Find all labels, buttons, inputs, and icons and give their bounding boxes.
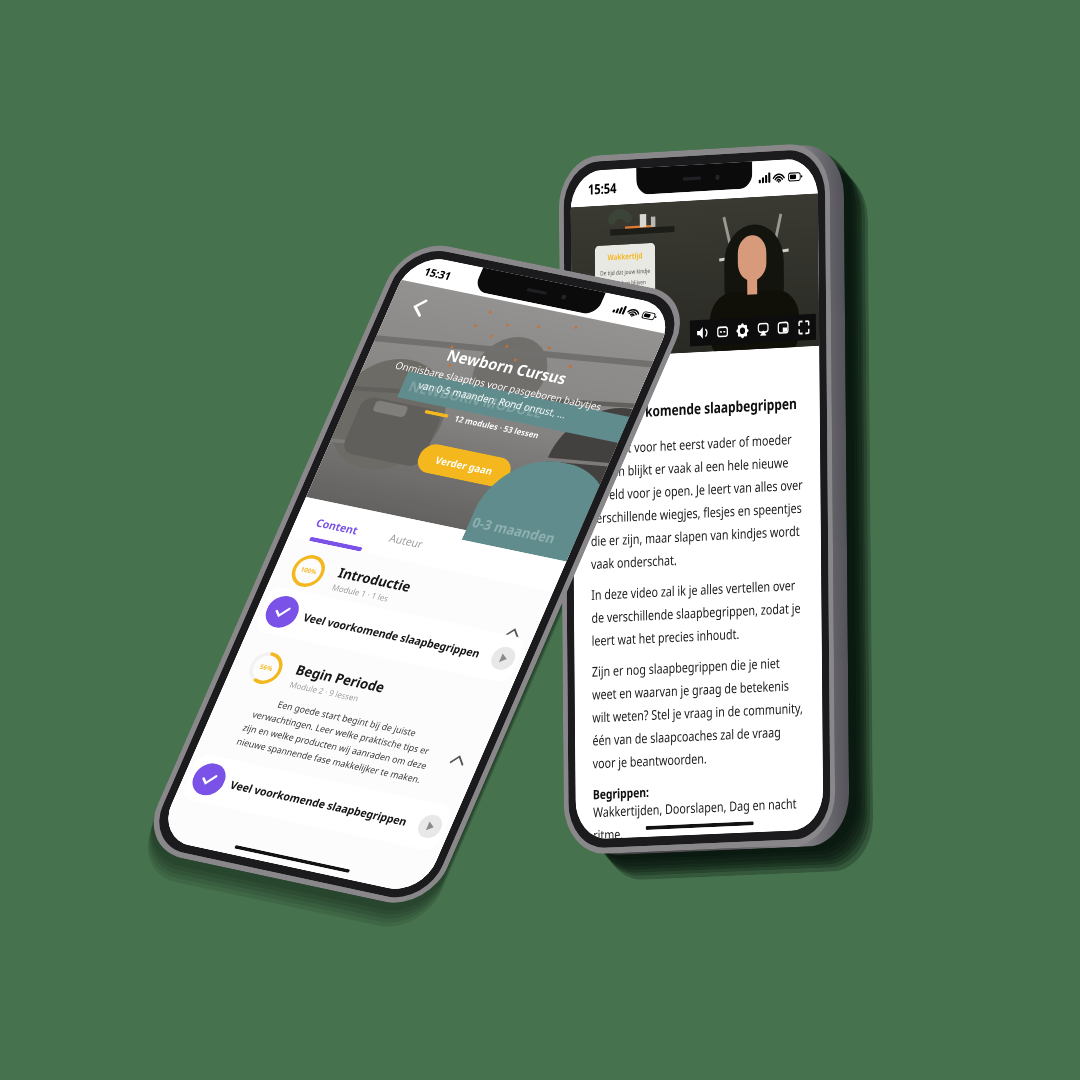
button[interactable]: Player control <box>796 317 812 338</box>
staticText: Introductie <box>335 563 414 595</box>
staticText: Module 1 · 1 les <box>330 581 391 603</box>
staticText: NEWBORN MODULE <box>405 376 547 423</box>
staticText: Begrippen: <box>593 783 649 803</box>
staticText: Zijn er nog slaapbegrippen die je niet w… <box>592 653 805 772</box>
staticText: 0-3 maanden <box>469 513 559 547</box>
button[interactable]: Verder gaan <box>413 442 515 489</box>
button[interactable]: Play <box>487 645 519 672</box>
staticText: 15:54 <box>588 178 617 199</box>
staticText: Veel voorkomende slaapbegrippen <box>301 609 495 663</box>
staticText: Wakkertijden, Doorslapen, Dag en nacht r… <box>593 794 806 839</box>
button[interactable]: Veel voorkomende slaapbegrippen <box>180 753 454 852</box>
button[interactable]: Player control <box>694 322 710 343</box>
button[interactable]: Collapse <box>496 618 530 648</box>
button[interactable]: Content <box>314 515 361 537</box>
staticText: Auteur <box>387 530 426 551</box>
button[interactable]: Player control <box>714 321 731 342</box>
staticText: Je wordt voor het eerst vader of moeder … <box>590 430 803 573</box>
button[interactable]: Player control <box>734 320 750 341</box>
button[interactable]: Auteur <box>387 530 426 551</box>
staticText: Content <box>314 515 361 537</box>
button[interactable]: Player control <box>775 318 791 339</box>
staticText: Veel voorkomende slaapbegrippen <box>590 393 797 424</box>
staticText: 12 modules · 53 lessen <box>453 412 542 440</box>
button[interactable]: Veel voorkomende slaapbegrippen <box>253 585 527 684</box>
staticText: Wakkertijd <box>607 249 642 262</box>
staticText: 56% <box>258 662 275 674</box>
staticText: Onmisbare slaaptips voor pasgeboren baby… <box>387 358 604 427</box>
button[interactable]: Back <box>396 287 442 326</box>
staticText: In deze video zal ik je alles vertellen … <box>591 576 804 650</box>
button[interactable]: Collapse <box>441 745 475 775</box>
staticText: Module 2 · 9 lessen <box>288 678 361 703</box>
staticText: Een goede start begint bij de juiste ver… <box>232 692 444 785</box>
staticText: 15:31 <box>422 264 454 283</box>
staticText: Verder gaan <box>433 453 495 478</box>
staticText: De tijd dat jouw kindje wakker kan blijv… <box>600 267 651 299</box>
staticText: 100% <box>299 565 319 577</box>
staticText: Newborn Cursus <box>443 345 571 389</box>
button[interactable]: Play <box>414 813 446 840</box>
button[interactable]: Player control <box>755 319 771 340</box>
staticText: Veel voorkomende slaapbegrippen <box>228 777 422 831</box>
staticText: Begin Periode <box>293 660 388 696</box>
